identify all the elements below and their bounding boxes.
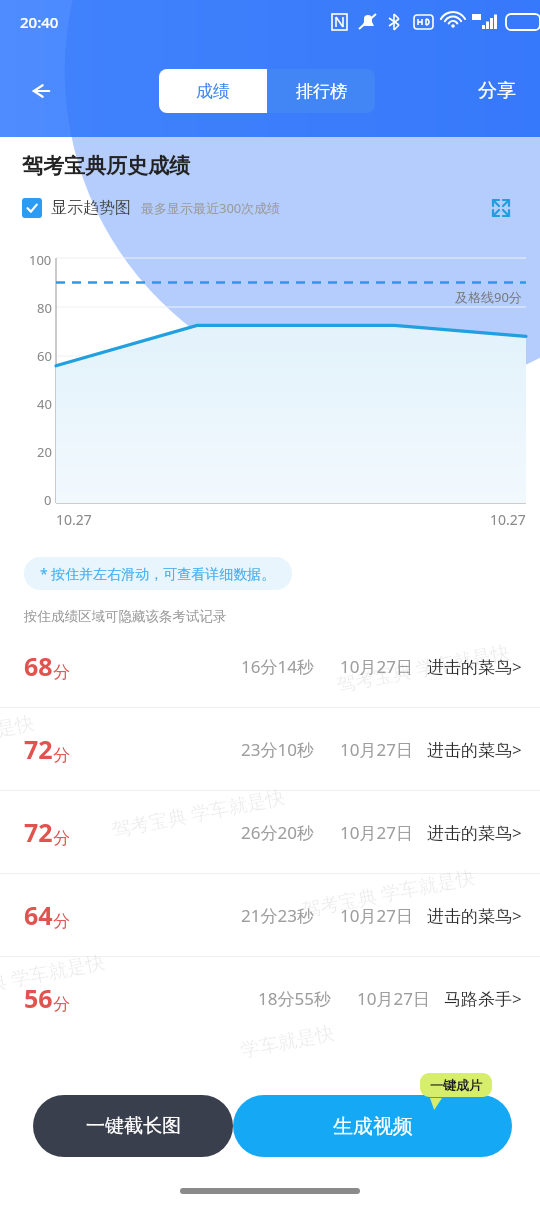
staticText: 驾考宝典 学车就是快 (299, 863, 477, 922)
staticText: 100 (29, 251, 52, 269)
staticText: 进击的菜鸟> (427, 821, 522, 844)
staticText: 分 (53, 662, 70, 683)
staticText: 成绩 (196, 81, 230, 102)
staticText: 10月27日 (340, 738, 413, 761)
staticText: 学车就是快 (239, 1021, 336, 1063)
staticText: 排行榜 (296, 81, 347, 102)
staticText: 一键截长图 (86, 1114, 181, 1138)
button[interactable]: 68 (0, 625, 540, 707)
staticText: 分 (53, 994, 70, 1015)
button[interactable]: 排行榜 (267, 69, 375, 113)
button[interactable]: 56 (0, 957, 540, 1039)
staticText: 驾考宝典 学车就是快 (109, 783, 287, 842)
staticText: 按住成绩区域可隐藏该条考试记录 (24, 608, 227, 625)
staticText: 16分14秒 (241, 655, 314, 678)
staticText: 40 (37, 395, 52, 413)
staticText: 18分55秒 (258, 987, 331, 1010)
staticText: 80 (37, 299, 52, 317)
staticText: 23分10秒 (241, 738, 314, 761)
staticText: 21分23秒 (241, 904, 314, 927)
staticText: * 按住并左右滑动，可查看详细数据。 (40, 564, 276, 583)
staticText: 72 (24, 815, 53, 849)
staticText: 及格线90分 (455, 288, 522, 306)
staticText: 分 (53, 911, 70, 932)
staticText: 10月27日 (340, 904, 413, 927)
button[interactable]: 一键截长图 (33, 1095, 233, 1157)
button[interactable]: 显示趋势图 (22, 198, 131, 218)
staticText: 分享 (478, 79, 516, 103)
staticText: 马路杀手> (444, 987, 522, 1010)
staticText: 生成视频 (333, 1114, 413, 1139)
staticText: 20 (37, 443, 52, 461)
staticText: 10月27日 (340, 655, 413, 678)
button[interactable]: 分享 (472, 71, 522, 111)
staticText: 60 (37, 347, 52, 365)
staticText: 进击的菜鸟> (427, 738, 522, 761)
button[interactable]: 64 (0, 874, 540, 956)
staticText: 进击的菜鸟> (427, 904, 522, 927)
staticText: 驾考宝典 学车就是快 (334, 638, 512, 697)
button[interactable]: Back (18, 69, 62, 113)
staticText: 驾考宝典 学车就是快 (0, 948, 107, 1007)
staticText: 0 (44, 491, 52, 509)
staticText: 72 (24, 732, 53, 766)
staticText: 68 (24, 649, 53, 683)
button[interactable]: 成绩 (159, 69, 267, 113)
staticText: 64 (24, 898, 53, 932)
staticText: 10.27 (56, 510, 92, 529)
staticText: 26分20秒 (241, 821, 314, 844)
staticText: 分 (53, 745, 70, 766)
staticText: 进击的菜鸟> (427, 655, 522, 678)
button[interactable]: 72 (0, 791, 540, 873)
button[interactable]: * 按住并左右滑动，可查看详细数据。 (24, 557, 292, 590)
staticText: 56 (24, 981, 53, 1015)
button[interactable]: 72 (0, 708, 540, 790)
button[interactable]: Fullscreen (484, 191, 518, 225)
staticText: 10月27日 (340, 821, 413, 844)
staticText: 显示趋势图 (51, 198, 131, 218)
staticText: 学车就是快 (0, 711, 36, 753)
staticText: 分 (53, 828, 70, 849)
button[interactable]: 生成视频 (233, 1095, 512, 1157)
staticText: 10.27 (490, 510, 526, 529)
staticText: 10月27日 (357, 987, 430, 1010)
staticText: 20:40 (20, 12, 59, 32)
staticText: 驾考宝典历史成绩 (22, 153, 190, 179)
staticText: 最多显示最近300次成绩 (141, 199, 281, 217)
staticText: 一键成片 (430, 1077, 482, 1093)
